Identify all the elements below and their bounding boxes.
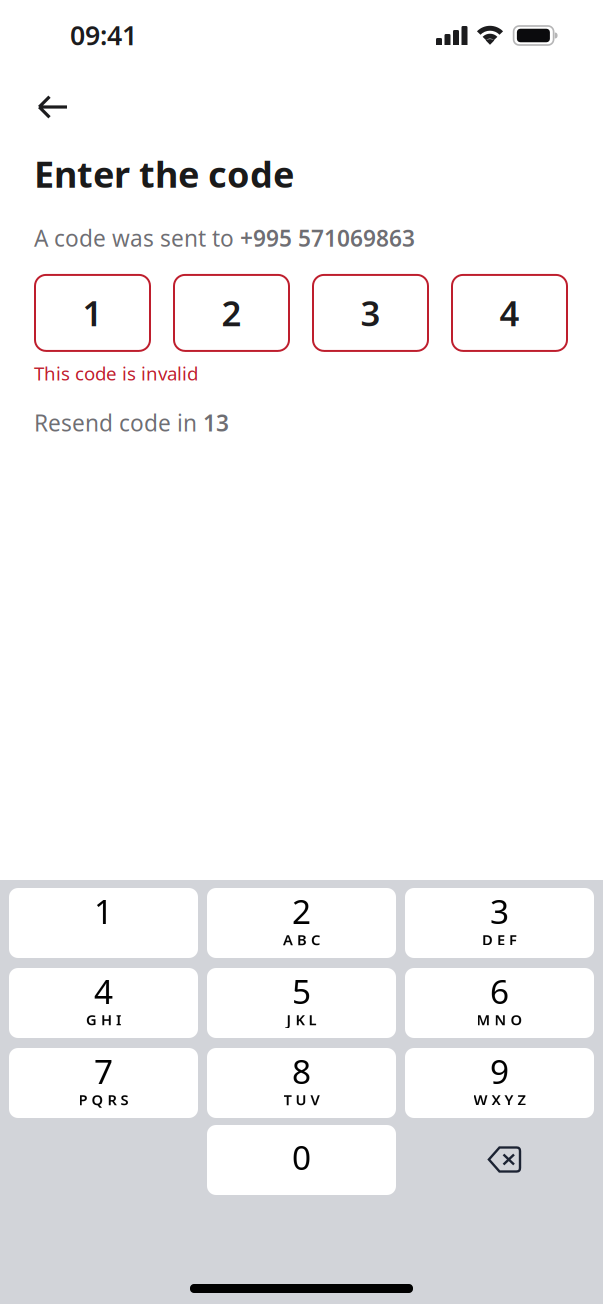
- staticText: 2: [292, 889, 311, 933]
- staticText: 13: [203, 408, 229, 438]
- staticText: 5: [292, 969, 311, 1013]
- staticText: G H I: [86, 1010, 121, 1029]
- staticText: 8: [292, 1049, 311, 1093]
- staticText: D E F: [482, 930, 517, 949]
- staticText: 3: [360, 290, 380, 336]
- staticText: 0: [292, 1135, 311, 1179]
- button[interactable]: Back: [0, 62, 88, 129]
- staticText: Resend code in: [34, 408, 203, 438]
- staticText: 09:41: [70, 17, 137, 53]
- staticText: A code was sent to: [34, 223, 240, 253]
- staticText: J K L: [286, 1010, 316, 1029]
- staticText: A B C: [283, 930, 320, 949]
- button[interactable]: 7: [9, 1048, 198, 1118]
- button[interactable]: 4: [9, 968, 198, 1038]
- staticText: P Q R S: [78, 1090, 128, 1109]
- staticText: Enter the code: [34, 150, 294, 198]
- button[interactable]: 8: [207, 1048, 396, 1118]
- staticText: T U V: [283, 1090, 319, 1109]
- button[interactable]: 9: [405, 1048, 594, 1118]
- staticText: 4: [499, 290, 519, 336]
- staticText: 7: [94, 1049, 113, 1093]
- staticText: 1: [94, 889, 113, 933]
- button[interactable]: 5: [207, 968, 396, 1038]
- staticText: 4: [94, 969, 113, 1013]
- button[interactable]: 1: [9, 888, 198, 958]
- button[interactable]: 3: [405, 888, 594, 958]
- button[interactable]: 6: [405, 968, 594, 1038]
- button[interactable]: 2: [207, 888, 396, 958]
- staticText: W X Y Z: [473, 1090, 525, 1109]
- button[interactable]: 0: [207, 1125, 396, 1195]
- staticText: 1: [82, 290, 102, 336]
- staticText: 6: [490, 969, 509, 1013]
- staticText: M N O: [476, 1010, 522, 1029]
- staticText: 2: [221, 290, 241, 336]
- button[interactable]: Delete: [405, 1125, 594, 1195]
- staticText: 3: [490, 889, 509, 933]
- staticText: 9: [490, 1049, 509, 1093]
- staticText: This code is invalid: [34, 361, 198, 386]
- staticText: +995 571069863: [240, 223, 415, 253]
